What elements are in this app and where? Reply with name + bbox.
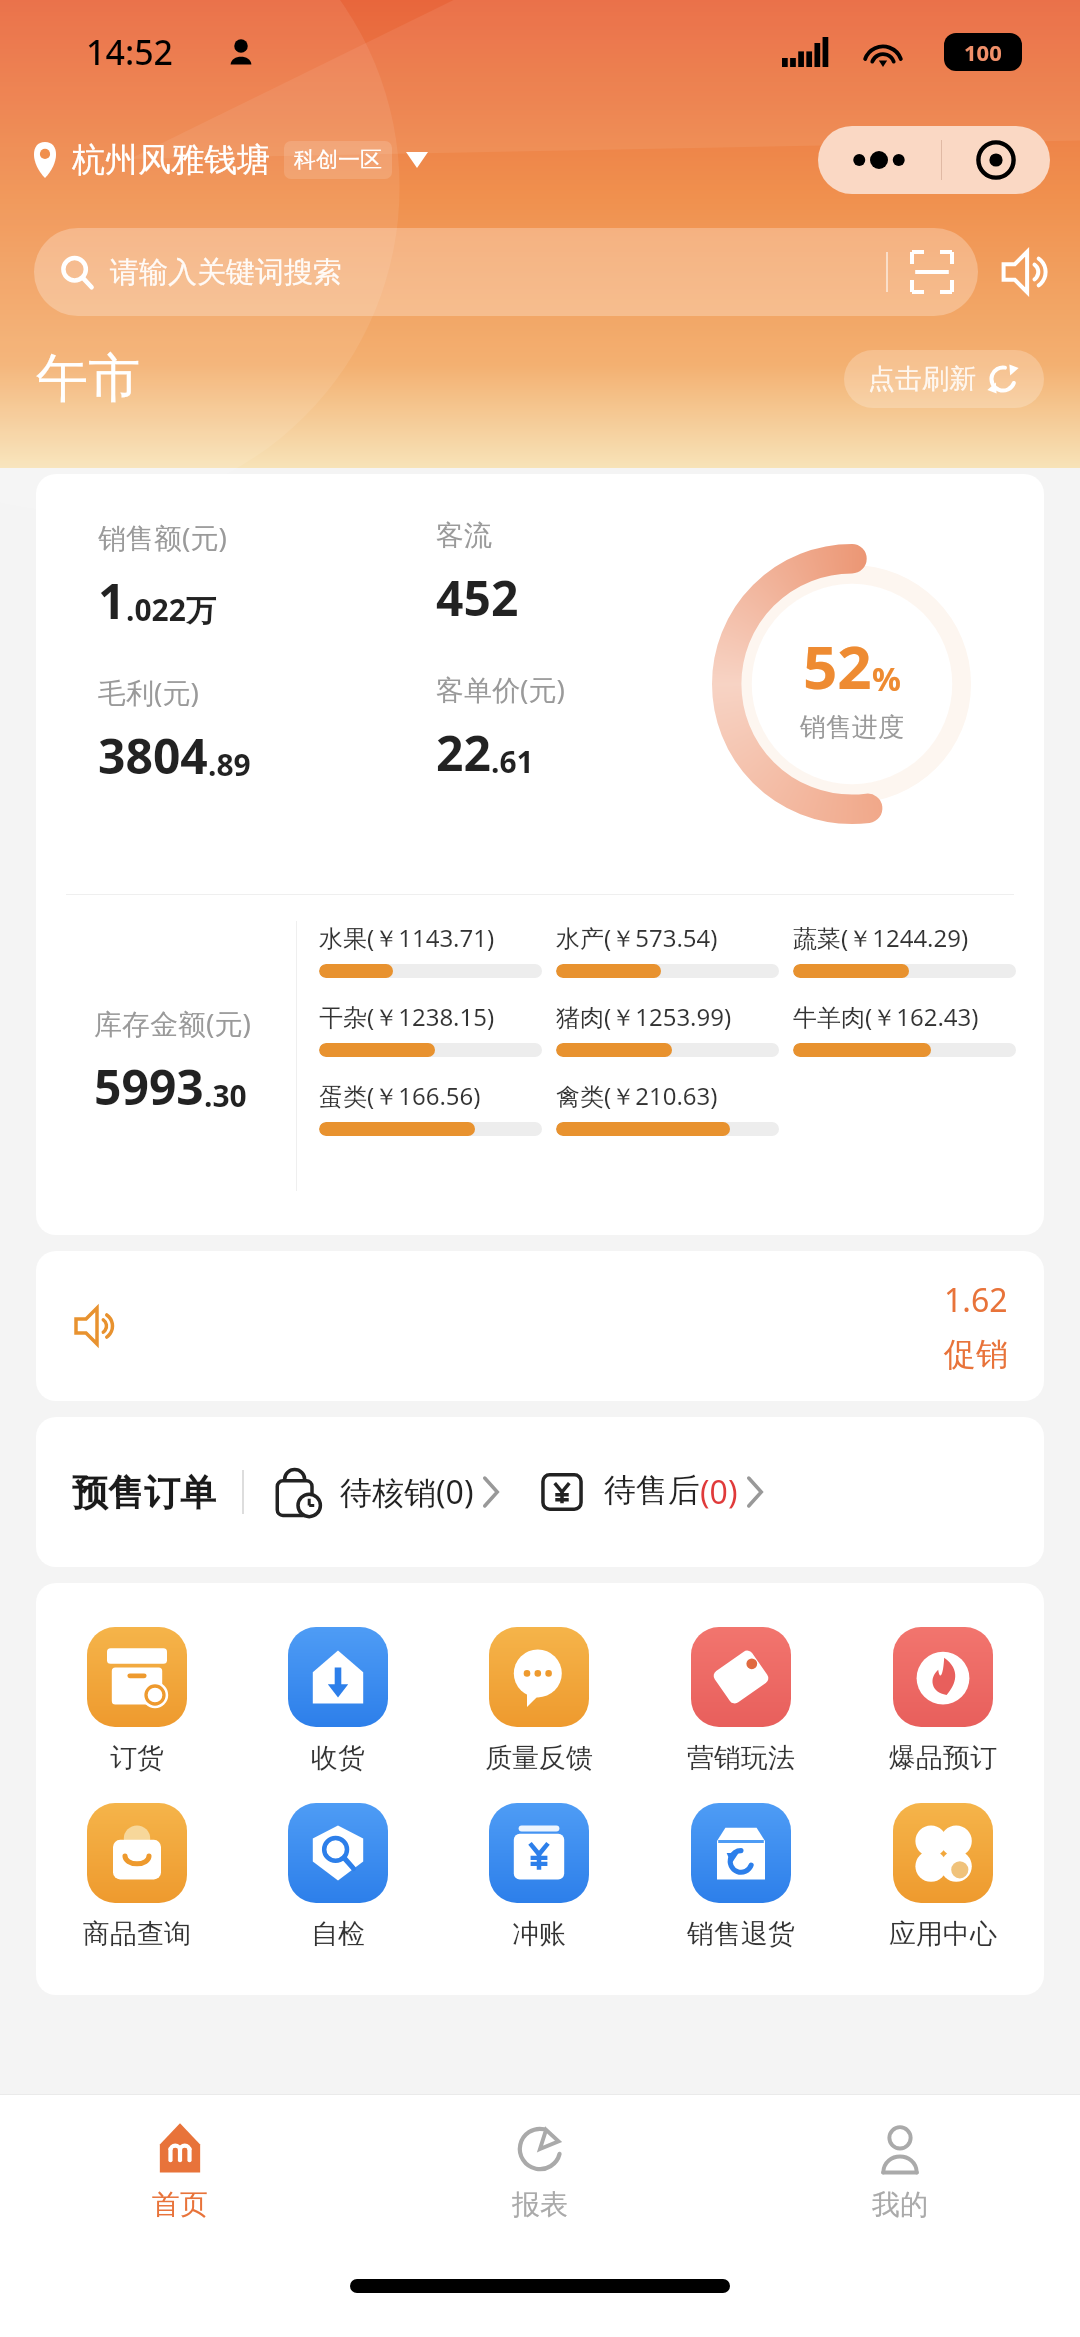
staticText: % [872, 657, 901, 701]
button[interactable]: 应用中心 [842, 1789, 1044, 1965]
staticText: 销售额(元) [98, 518, 227, 556]
staticText: 客单价(元) [436, 670, 565, 708]
staticText: 请输入关键词搜索 [110, 254, 342, 291]
button[interactable]: 杭州风雅钱塘 [30, 139, 428, 181]
button[interactable]: 首页 [0, 2095, 360, 2267]
button[interactable]: 报表 [360, 2095, 720, 2267]
staticText: .022万 [126, 589, 216, 630]
staticText: 我的 [872, 2187, 928, 2222]
staticText: 收货 [311, 1741, 365, 1775]
staticText: 质量反馈 [485, 1741, 593, 1775]
staticText: 销售退货 [687, 1917, 795, 1951]
staticText: 爆品预订 [889, 1741, 997, 1775]
button[interactable]: 自检 [237, 1789, 438, 1965]
button[interactable]: 营销玩法 [640, 1613, 842, 1789]
staticText: (0) [700, 1470, 738, 1514]
staticText: 1.62 [944, 1278, 1008, 1322]
staticText: 水果(￥1143.71) [319, 921, 495, 954]
button[interactable]: 待核销(0) [270, 1464, 500, 1520]
button[interactable]: 收货 [237, 1613, 438, 1789]
staticText: 待售后 [604, 1470, 700, 1510]
staticText: 商品查询 [83, 1917, 191, 1951]
button[interactable]: 订货 [36, 1613, 237, 1789]
button[interactable]: 我的 [720, 2095, 1080, 2267]
staticText: 蔬菜(￥1244.29) [793, 921, 969, 954]
staticText: 库存金额(元) [94, 1004, 251, 1042]
staticText: 冲账 [512, 1917, 566, 1951]
button[interactable]: 冲账 [438, 1789, 640, 1965]
staticText: 22 [436, 720, 491, 785]
button[interactable]: 请输入关键词搜索 [34, 228, 978, 316]
staticText: 促销 [944, 1334, 1008, 1374]
staticText: 52 [803, 625, 872, 707]
staticText: 自检 [311, 1917, 365, 1951]
staticText: 毛利(元) [98, 673, 199, 711]
button[interactable]: 质量反馈 [438, 1613, 640, 1789]
staticText: 销售进度 [800, 711, 904, 744]
button[interactable]: 爆品预订 [842, 1613, 1044, 1789]
staticText: 14:52 [86, 29, 174, 75]
staticText: 蛋类(￥166.56) [319, 1079, 481, 1112]
staticText: 3804 [98, 723, 208, 788]
staticText: 452 [436, 565, 519, 630]
staticText: 客流 [436, 518, 492, 553]
staticText: 干杂(￥1238.15) [319, 1000, 495, 1033]
button[interactable]: Announcements [998, 244, 1054, 300]
staticText: .89 [208, 744, 251, 785]
staticText: 待核销(0) [340, 1470, 474, 1514]
staticText: 禽类(￥210.63) [556, 1079, 718, 1112]
staticText: 100 [964, 37, 1002, 67]
button[interactable]: 销售退货 [640, 1789, 842, 1965]
staticText: 1 [98, 568, 126, 633]
button[interactable]: 商品查询 [36, 1789, 237, 1965]
staticText: 杭州风雅钱塘 [72, 139, 270, 181]
button[interactable]: More [818, 126, 1050, 194]
button[interactable]: 1.62 [36, 1251, 1044, 1401]
staticText: 应用中心 [889, 1917, 997, 1951]
staticText: 牛羊肉(￥162.43) [793, 1000, 979, 1033]
staticText: 5993 [94, 1054, 204, 1119]
staticText: 报表 [512, 2187, 568, 2222]
staticText: 订货 [110, 1741, 164, 1775]
staticText: 水产(￥573.54) [556, 921, 718, 954]
staticText: .61 [491, 741, 534, 782]
button[interactable]: 点击刷新 [844, 350, 1044, 408]
staticText: 预售订单 [72, 1470, 216, 1515]
other: Scan [912, 252, 952, 292]
staticText: 科创一区 [294, 146, 382, 174]
staticText: 点击刷新 [868, 362, 976, 396]
staticText: .30 [204, 1075, 247, 1116]
staticText: 营销玩法 [687, 1741, 795, 1775]
staticText: 猪肉(￥1253.99) [556, 1000, 732, 1033]
button[interactable]: 待售后 [534, 1464, 764, 1520]
staticText: 首页 [152, 2187, 208, 2222]
staticText: 午市 [36, 346, 140, 412]
